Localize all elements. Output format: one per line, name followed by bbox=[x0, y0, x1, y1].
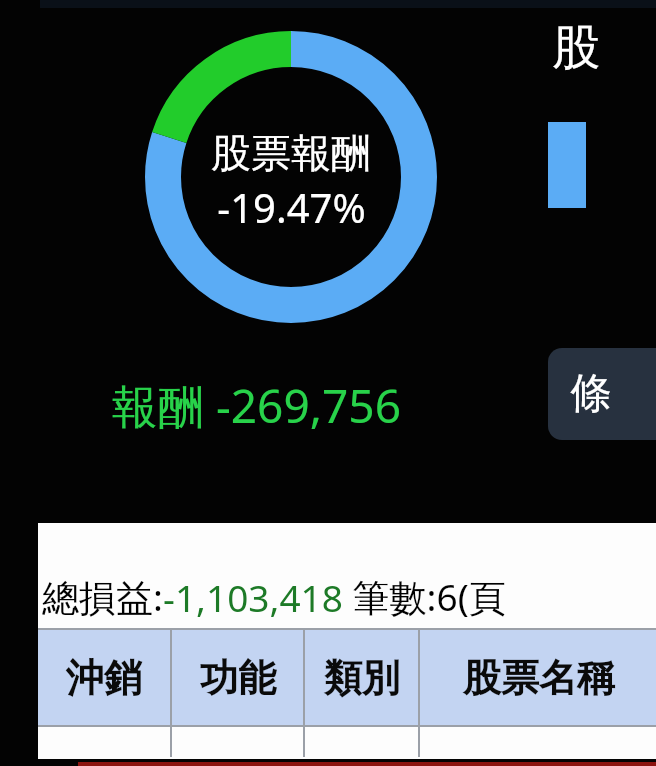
staticText: 報酬 -269,756 bbox=[112, 374, 401, 437]
button[interactable]: 功能 bbox=[172, 630, 303, 725]
staticText: -19.47% bbox=[217, 180, 366, 234]
staticText: -1,103,418 bbox=[163, 572, 343, 622]
button[interactable]: 報酬 -269,756 bbox=[112, 374, 401, 437]
button[interactable]: 總損益: bbox=[38, 523, 656, 628]
staticText: 條 bbox=[570, 368, 612, 421]
staticText: 總損益: bbox=[42, 571, 163, 622]
button[interactable]: 沖銷 bbox=[38, 630, 170, 725]
button[interactable]: 股 bbox=[552, 18, 600, 78]
button[interactable]: 類別 bbox=[305, 630, 418, 725]
staticText: 沖銷 bbox=[66, 654, 142, 702]
staticText: 類別 bbox=[324, 654, 400, 702]
staticText: 股票名稱 bbox=[463, 654, 615, 702]
staticText: 股票報酬 bbox=[211, 128, 371, 178]
staticText: 股 bbox=[552, 18, 600, 78]
button[interactable]: 股票名稱 bbox=[420, 630, 656, 725]
staticText: 筆數:6(頁 bbox=[343, 571, 506, 622]
button[interactable]: 股票報酬圓餅圖 bbox=[145, 31, 437, 323]
button[interactable] bbox=[38, 727, 656, 757]
staticText: 功能 bbox=[200, 654, 276, 702]
button[interactable]: 條 bbox=[548, 348, 656, 440]
